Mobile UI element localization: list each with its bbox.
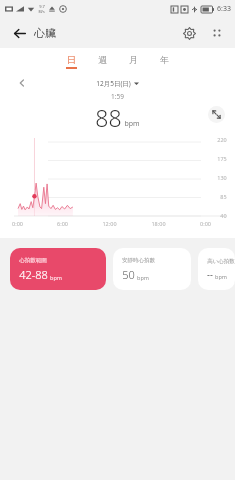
staticText: 6:33 xyxy=(217,4,231,14)
staticText: 12月5日(日) xyxy=(96,79,131,88)
staticText: 年 xyxy=(160,54,169,65)
staticText: 週 xyxy=(98,54,107,65)
button[interactable]: 安靜時心拍數 xyxy=(113,248,191,290)
button[interactable]: Back xyxy=(8,22,30,44)
staticText: bpm xyxy=(215,273,227,280)
button[interactable]: More options xyxy=(205,21,229,45)
staticText: 心拍數範圍 xyxy=(19,257,47,264)
button[interactable]: Previous day xyxy=(14,75,30,91)
staticText: M/s xyxy=(38,9,45,14)
staticText: 42-88 xyxy=(19,267,48,282)
button[interactable]: 心拍數範圍 xyxy=(10,248,106,290)
staticText: 安靜時心拍數 xyxy=(122,257,155,264)
button[interactable]: 年 xyxy=(151,48,177,74)
staticText: 18:00 xyxy=(151,220,166,227)
staticText: -- xyxy=(207,268,213,280)
staticText: bpm xyxy=(137,274,149,281)
staticText: bpm xyxy=(50,274,62,281)
button[interactable]: 高い心拍数 xyxy=(198,248,235,290)
staticText: 130 xyxy=(217,174,227,181)
staticText: 40 xyxy=(220,212,227,219)
staticText: 0:00 xyxy=(12,220,23,227)
staticText: 88 xyxy=(95,102,122,132)
staticText: 1:59 xyxy=(111,92,124,101)
staticText: 9.7 xyxy=(39,4,45,9)
staticText: 心臟 xyxy=(34,26,56,40)
staticText: 12:00 xyxy=(102,220,117,227)
staticText: 50 xyxy=(122,267,135,282)
staticText: 6:00 xyxy=(57,220,68,227)
button[interactable]: 月 xyxy=(120,48,146,74)
button[interactable]: 日 xyxy=(58,48,84,74)
staticText: 85 xyxy=(220,193,227,200)
staticText: bpm xyxy=(124,119,140,129)
button[interactable]: Expand chart xyxy=(208,106,225,123)
staticText: 日 xyxy=(67,54,76,65)
staticText: 高い心拍数 xyxy=(207,258,235,265)
staticText: 220 xyxy=(217,136,227,143)
staticText: 月 xyxy=(129,54,138,65)
button[interactable]: Settings xyxy=(177,21,201,45)
staticText: 175 xyxy=(217,155,227,162)
button[interactable]: 週 xyxy=(89,48,115,74)
staticText: 0:00 xyxy=(200,220,211,227)
button[interactable]: 12月5日(日) xyxy=(96,79,139,88)
